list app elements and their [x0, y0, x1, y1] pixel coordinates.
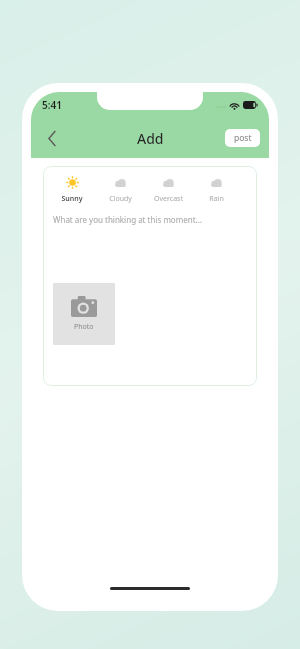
staticText: Add	[137, 129, 164, 148]
button[interactable]: Add photo	[53, 283, 115, 345]
staticText: 5:41	[42, 98, 62, 112]
button[interactable]: Rain	[197, 176, 235, 204]
staticText: Cloudy	[109, 194, 132, 204]
button[interactable]: Back	[37, 123, 67, 153]
staticText: Rain	[209, 194, 224, 204]
button[interactable]: Cloudy	[101, 176, 139, 204]
staticText: post	[234, 132, 252, 144]
button[interactable]: post	[225, 129, 260, 147]
staticText: Overcast	[154, 194, 183, 204]
staticText: Sunny	[61, 194, 83, 204]
staticText: Photo	[74, 322, 94, 332]
button[interactable]: Sunny	[53, 176, 91, 204]
button[interactable]: Overcast	[149, 176, 187, 204]
staticText: What are you thinking at this moment...	[53, 214, 202, 225]
